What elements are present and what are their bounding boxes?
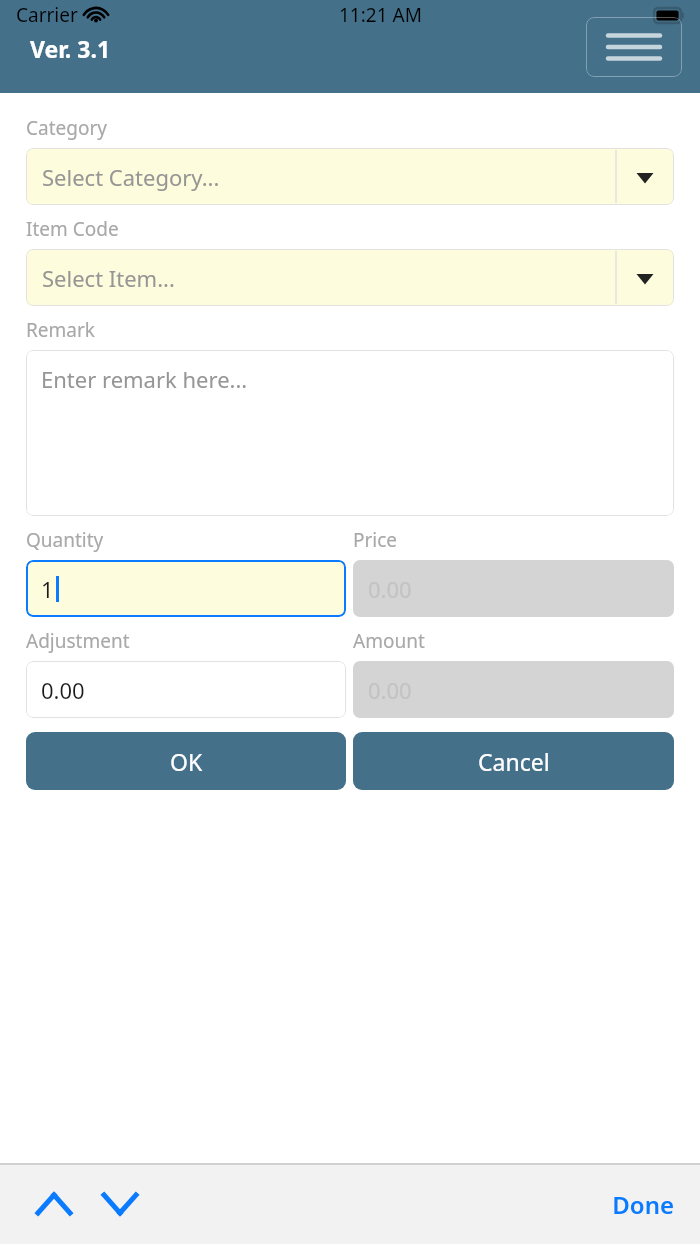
button[interactable]: Cancel	[353, 732, 674, 790]
button[interactable]: Select Item...	[26, 249, 674, 306]
staticText: Remark	[26, 317, 95, 343]
staticText: Price	[353, 527, 674, 553]
button[interactable]: 1	[26, 560, 346, 617]
staticText: Done	[612, 1188, 674, 1221]
staticText: Quantity	[26, 527, 346, 553]
staticText: Enter remark here...	[41, 364, 248, 394]
button[interactable]: Done	[600, 1180, 686, 1229]
button[interactable]: 0.00	[26, 661, 346, 718]
staticText: 1	[41, 574, 54, 604]
staticText: Carrier	[16, 2, 78, 28]
staticText: 0.00	[368, 574, 412, 604]
button[interactable]: OK	[26, 732, 346, 790]
staticText: Item Code	[26, 216, 119, 242]
staticText: Category	[26, 115, 107, 141]
staticText: 0.00	[41, 675, 85, 705]
button[interactable]: Menu	[586, 17, 682, 77]
button[interactable]: Select Category...	[26, 148, 674, 205]
button[interactable]: Enter remark here...	[26, 350, 674, 516]
button[interactable]: Next field	[94, 1178, 146, 1230]
staticText: Select Item...	[42, 263, 175, 293]
staticText: Cancel	[478, 746, 550, 777]
staticText: OK	[170, 746, 203, 777]
button[interactable]: Previous field	[28, 1178, 80, 1230]
staticText: Amount	[353, 628, 674, 654]
staticText: 0.00	[368, 675, 412, 705]
staticText: Adjustment	[26, 628, 346, 654]
staticText: 11:21 AM	[339, 2, 422, 28]
staticText: Select Category...	[42, 162, 220, 192]
staticText: Ver. 3.1	[30, 33, 111, 64]
